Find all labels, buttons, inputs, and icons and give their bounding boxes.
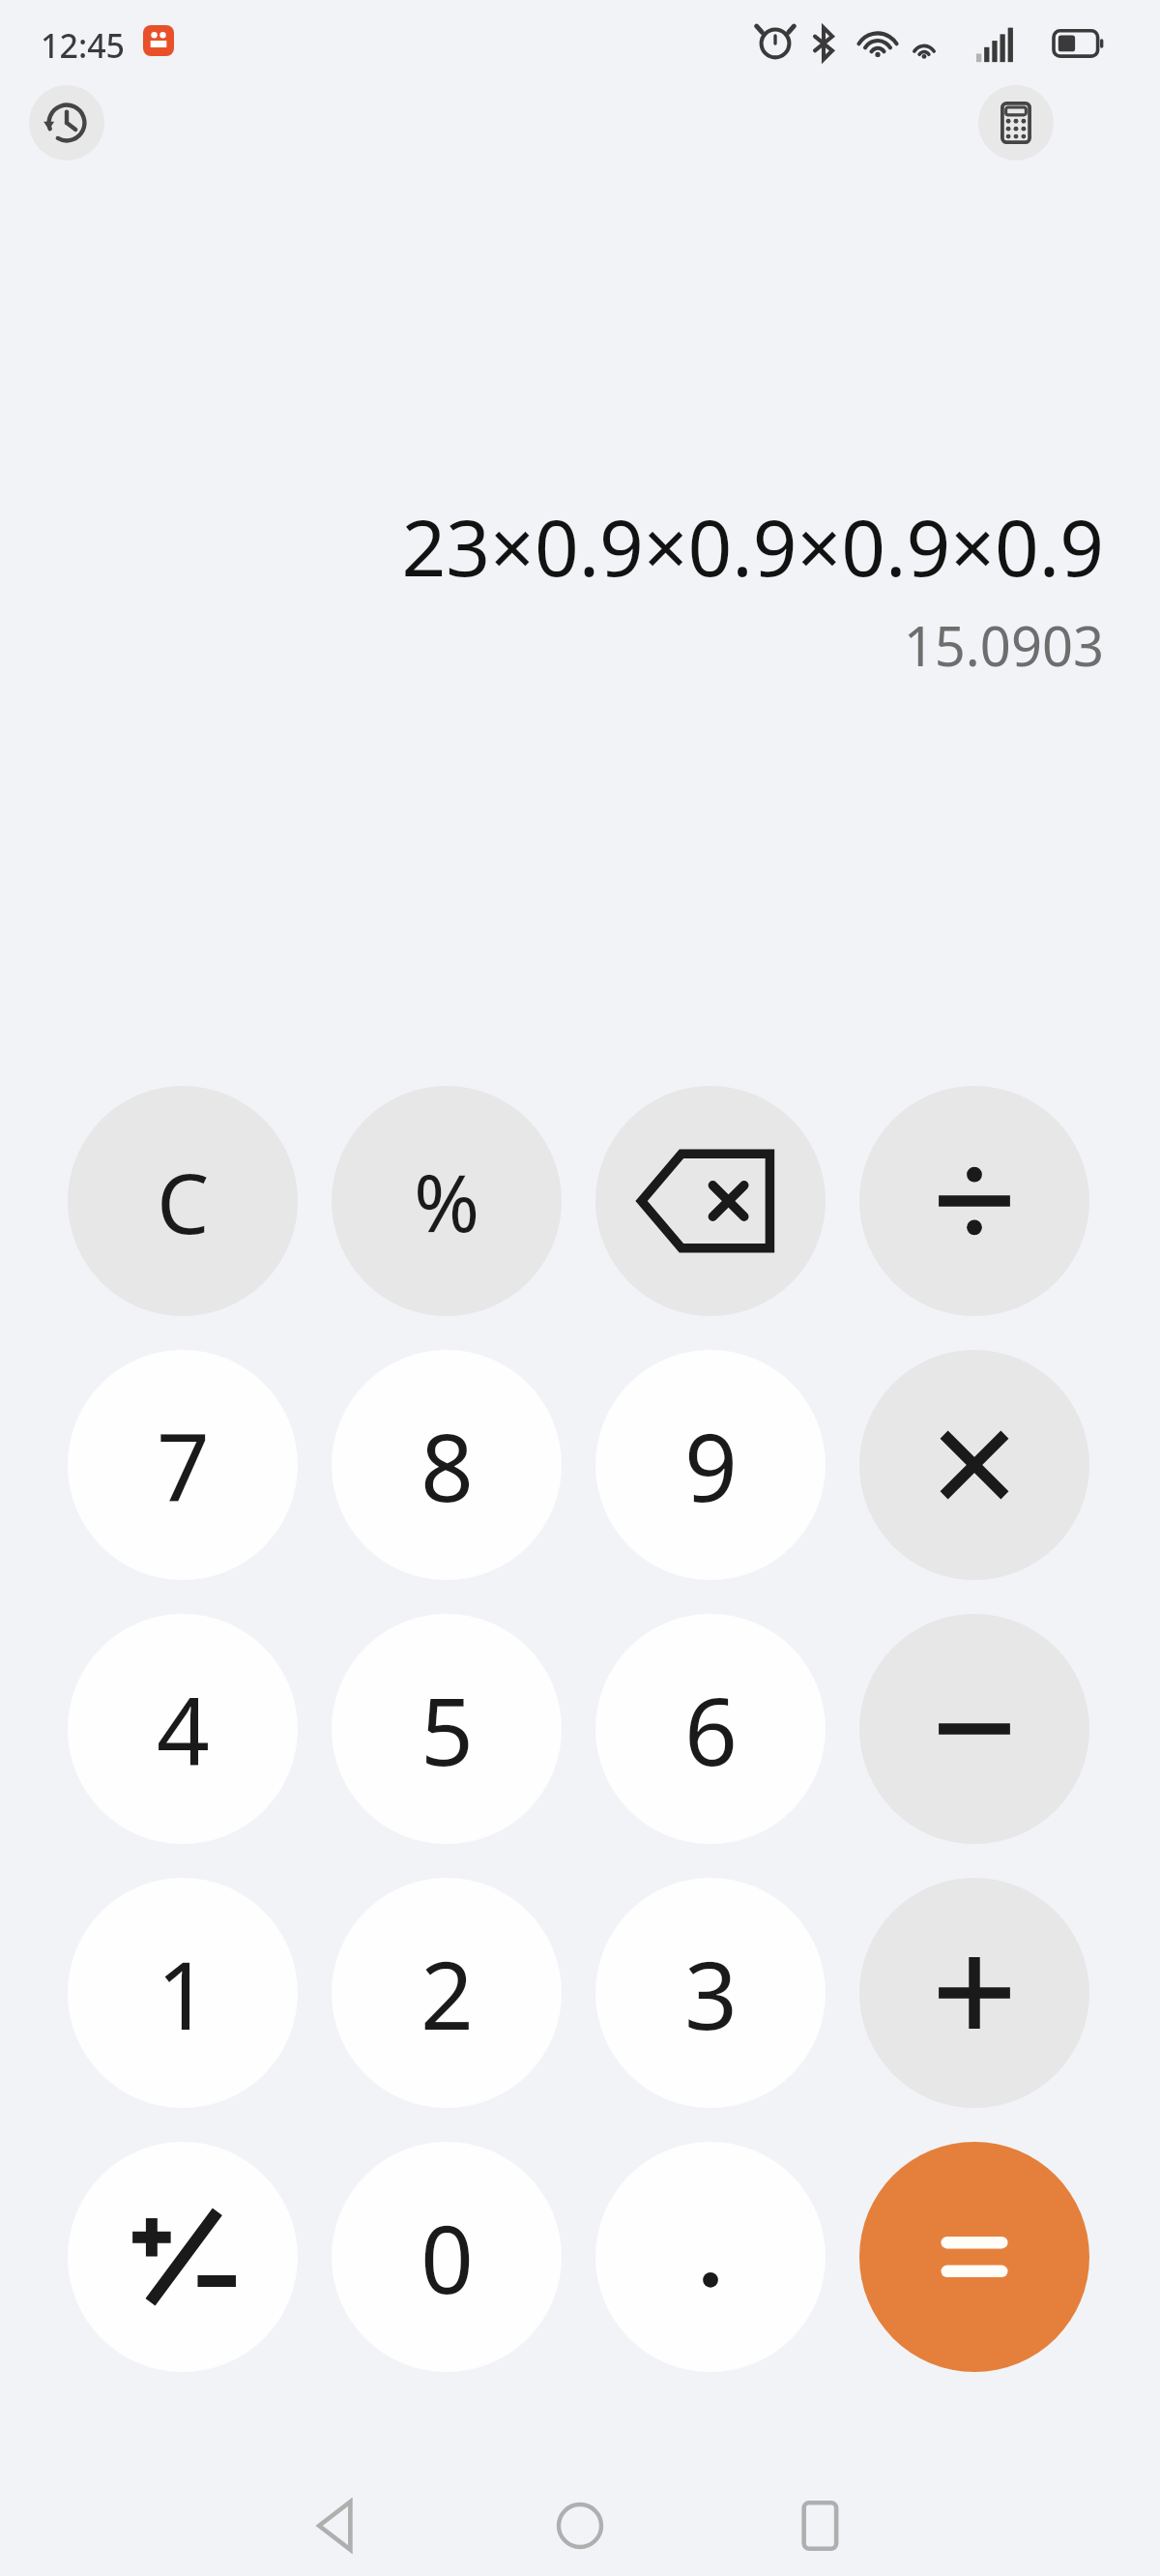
button[interactable]: C [68, 1086, 298, 1316]
button[interactable]: 2 [332, 1878, 562, 2108]
staticText: 7 [157, 1402, 210, 1529]
staticText: 3 [684, 1930, 738, 2057]
button[interactable]: Plus minus [68, 2142, 298, 2372]
button[interactable]: 8 [332, 1350, 562, 1580]
button[interactable]: 9 [595, 1350, 826, 1580]
button[interactable]: Home [522, 2468, 638, 2576]
button[interactable]: Back [280, 2468, 396, 2576]
staticText: 2 [420, 1930, 474, 2057]
button[interactable]: Plus [859, 1878, 1089, 2108]
staticText: 0 [420, 2194, 474, 2321]
button[interactable]: Decimal point [595, 2142, 826, 2372]
button[interactable]: 4 [68, 1614, 298, 1844]
button[interactable]: 7 [68, 1350, 298, 1580]
button[interactable]: 3 [595, 1878, 826, 2108]
staticText: 6 [684, 1666, 738, 1793]
staticText: 5 [420, 1666, 474, 1793]
staticText: 9 [684, 1402, 738, 1529]
button[interactable]: Delete [595, 1086, 826, 1316]
button[interactable]: % [332, 1086, 562, 1316]
staticText: % [414, 1147, 480, 1255]
button[interactable]: 0 [332, 2142, 562, 2372]
button[interactable]: Multiply [859, 1350, 1089, 1580]
button[interactable]: History [29, 85, 104, 161]
button[interactable]: Minus [859, 1614, 1089, 1844]
staticText: 23×0.9×0.9×0.9×0.9 [401, 493, 1104, 599]
staticText: 4 [157, 1666, 210, 1793]
button[interactable]: Recent apps [764, 2468, 880, 2576]
staticText: 1 [157, 1930, 210, 2057]
button[interactable]: 5 [332, 1614, 562, 1844]
button[interactable]: Calculator mode [978, 85, 1054, 161]
staticText: C [157, 1145, 210, 1258]
button[interactable]: 6 [595, 1614, 826, 1844]
button[interactable]: 1 [68, 1878, 298, 2108]
button[interactable]: Equals [859, 2142, 1089, 2372]
staticText: 15.0903 [903, 608, 1104, 682]
button[interactable]: Divide [859, 1086, 1089, 1316]
staticText: 12:45 [41, 23, 126, 68]
staticText: 8 [420, 1402, 474, 1529]
